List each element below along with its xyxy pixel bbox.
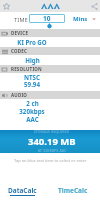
staticText: AT 320KBPS AAC [38,149,67,153]
button[interactable]: High [0,55,100,65]
staticText: 2 ch [26,99,39,107]
staticText: CODEC [11,48,28,54]
button[interactable]: NTSC [0,73,100,80]
staticText: Mins [73,15,88,23]
button[interactable]: STORAGE REQUIRED [0,130,100,153]
staticText: NTSC [24,73,40,80]
button[interactable]: AAC [0,115,100,123]
button[interactable]: 320kbps [0,107,100,115]
staticText: 59.94 [24,80,40,87]
button[interactable]: 59.94 [0,80,100,87]
button[interactable]: KI Pro GO [0,37,100,47]
staticText: AUDIO [11,92,28,98]
staticText: DataCalc [8,186,37,195]
button[interactable]: Share [89,1,99,11]
staticText: RESOLUTION [11,66,42,72]
staticText: 10 [43,14,51,23]
staticText: KI Pro GO [17,38,47,46]
button[interactable]: Favorite [1,1,11,11]
staticText: 320kbps [19,107,45,115]
staticText: 340.19 MB [28,135,76,148]
button[interactable]: DataCalc [2,170,42,200]
button[interactable]: Mins [70,14,98,23]
staticText: TimeCalc [58,186,88,195]
staticText: STORAGE REQUIRED [34,130,70,134]
button[interactable]: TimeCalc [53,170,93,200]
staticText: High [25,56,40,64]
button[interactable]: 10 [29,14,65,23]
staticText: AAC [26,115,39,123]
staticText: TIME [14,16,29,23]
staticText: Tap on blue text item to select or enter [14,158,87,163]
staticText: DEVICE [11,30,29,36]
button[interactable]: 2 ch [0,99,100,107]
